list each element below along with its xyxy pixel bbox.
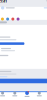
button[interactable]: Tab	[0, 89, 9, 100]
button[interactable]: Tab	[33, 89, 45, 100]
button[interactable]: Tab	[21, 89, 33, 100]
staticText: 9:41	[0, 0, 7, 3]
button[interactable]: Tab	[45, 89, 47, 100]
button[interactable]: Tab	[9, 89, 21, 100]
